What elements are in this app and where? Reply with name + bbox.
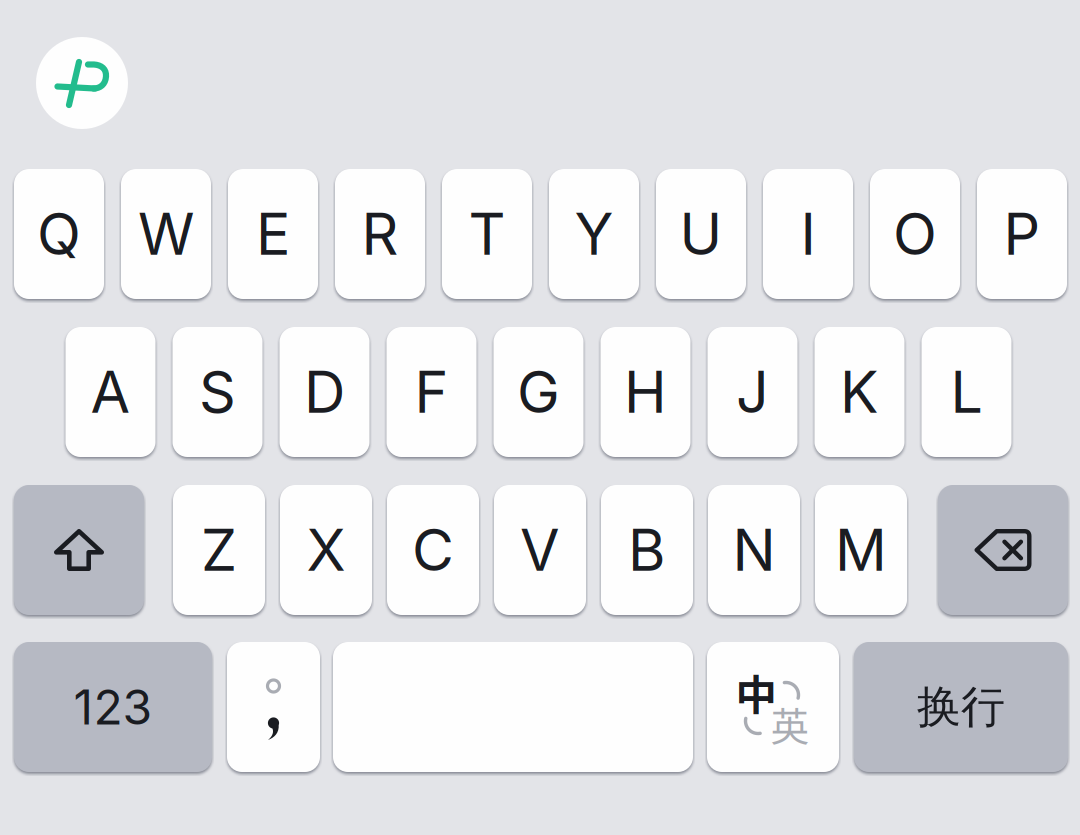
button[interactable]: D xyxy=(279,327,369,457)
staticText: Z xyxy=(201,515,237,585)
button[interactable]: Space xyxy=(333,642,693,772)
button[interactable]: R xyxy=(335,169,425,299)
button[interactable]: W xyxy=(121,169,211,299)
button[interactable]: C xyxy=(387,485,479,615)
staticText: K xyxy=(840,357,879,427)
staticText: A xyxy=(90,357,130,427)
button[interactable]: I xyxy=(763,169,853,299)
staticText: L xyxy=(950,357,982,427)
staticText: P xyxy=(1003,199,1040,269)
button[interactable]: P xyxy=(977,169,1067,299)
button[interactable]: G xyxy=(493,327,583,457)
button[interactable]: A xyxy=(65,327,155,457)
button[interactable]: B xyxy=(601,485,693,615)
button[interactable]: J xyxy=(707,327,797,457)
button[interactable]: Y xyxy=(549,169,639,299)
staticText: 中 xyxy=(735,662,776,722)
button[interactable]: X xyxy=(280,485,372,615)
button[interactable]: S xyxy=(172,327,262,457)
button[interactable]: L xyxy=(921,327,1011,457)
button[interactable]: 换行 xyxy=(854,642,1068,772)
button[interactable]: Punctuation xyxy=(227,642,320,772)
staticText: T xyxy=(468,199,505,269)
button[interactable]: Shift xyxy=(14,485,144,615)
staticText: E xyxy=(256,199,290,269)
staticText: F xyxy=(414,357,448,427)
button[interactable]: H xyxy=(600,327,690,457)
staticText: S xyxy=(199,357,236,427)
staticText: V xyxy=(520,515,560,585)
staticText: G xyxy=(517,357,560,427)
button[interactable]: F xyxy=(386,327,476,457)
staticText: U xyxy=(679,199,722,269)
button[interactable]: Keyboard app logo xyxy=(36,37,128,129)
staticText: M xyxy=(835,515,887,585)
button[interactable]: Delete xyxy=(938,485,1068,615)
staticText: D xyxy=(304,357,345,427)
staticText: 英 xyxy=(770,696,809,752)
staticText: R xyxy=(361,199,398,269)
button[interactable]: E xyxy=(228,169,318,299)
staticText: N xyxy=(732,515,775,585)
staticText: J xyxy=(736,357,769,427)
staticText: X xyxy=(306,515,345,585)
staticText: Y xyxy=(574,199,613,269)
staticText: B xyxy=(628,515,666,585)
button[interactable]: V xyxy=(494,485,586,615)
button[interactable]: O xyxy=(870,169,960,299)
button[interactable]: K xyxy=(814,327,904,457)
button[interactable]: U xyxy=(656,169,746,299)
staticText: 123 xyxy=(73,678,152,736)
button[interactable]: Switch Chinese English xyxy=(707,642,839,772)
button[interactable]: Z xyxy=(173,485,265,615)
button[interactable]: M xyxy=(815,485,907,615)
staticText: W xyxy=(138,199,194,269)
staticText: H xyxy=(624,357,667,427)
button[interactable]: 123 xyxy=(14,642,212,772)
staticText: O xyxy=(893,199,937,269)
staticText: I xyxy=(800,199,815,269)
button[interactable]: Q xyxy=(14,169,104,299)
button[interactable]: N xyxy=(708,485,800,615)
staticText: C xyxy=(412,515,454,585)
staticText: 换行 xyxy=(917,679,1005,735)
button[interactable]: T xyxy=(442,169,532,299)
staticText: Q xyxy=(37,199,81,269)
